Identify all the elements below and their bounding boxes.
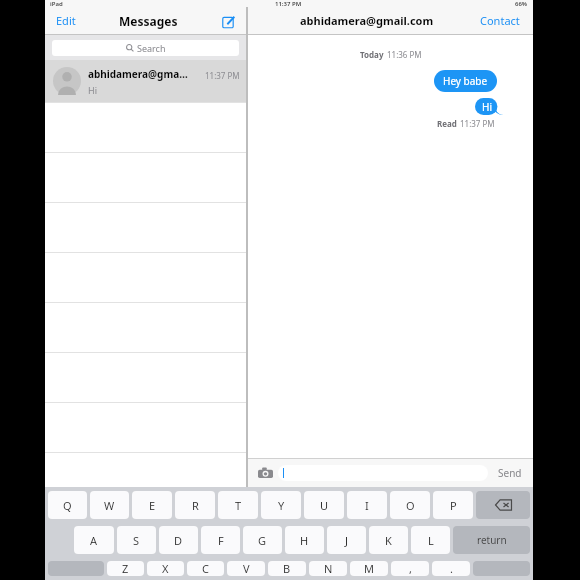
button[interactable]: V <box>227 561 265 576</box>
staticText: H <box>300 533 309 548</box>
button[interactable]: Backspace <box>476 491 530 519</box>
staticText: A <box>90 533 98 548</box>
staticText: U <box>320 498 329 513</box>
button[interactable]: Take photo <box>256 464 274 482</box>
button[interactable]: C <box>187 561 224 576</box>
staticText: W <box>104 498 115 513</box>
staticText: L <box>428 533 434 548</box>
button[interactable]: G <box>243 526 282 554</box>
button[interactable]: Contact <box>477 9 523 32</box>
staticText: S <box>133 533 140 548</box>
staticText: K <box>385 533 392 548</box>
staticText: Read <box>437 118 457 129</box>
button[interactable]: . <box>432 561 470 576</box>
staticText: J <box>345 533 349 548</box>
staticText: E <box>149 498 156 513</box>
staticText: 11:36 PM <box>387 49 422 60</box>
button[interactable]: , <box>391 561 429 576</box>
staticText: Today <box>360 49 384 60</box>
staticText: F <box>218 533 224 548</box>
button[interactable]: Return <box>453 526 530 554</box>
button[interactable]: N <box>309 561 347 576</box>
staticText: iPad <box>50 0 63 7</box>
staticText: M <box>364 561 374 576</box>
button[interactable]: J <box>327 526 366 554</box>
staticText: Q <box>63 498 72 513</box>
staticText: 11:37 PM <box>205 70 240 81</box>
staticText: Messages <box>119 13 178 29</box>
staticText: T <box>235 498 242 513</box>
button[interactable]: X <box>147 561 184 576</box>
button[interactable]: abhidamera@gma… <box>45 60 246 102</box>
button[interactable]: R <box>175 491 215 519</box>
button[interactable]: M <box>350 561 388 576</box>
button[interactable]: O <box>390 491 430 519</box>
button[interactable]: P <box>433 491 473 519</box>
staticText: Search <box>137 42 166 54</box>
staticText: Hey babe <box>443 74 488 88</box>
button[interactable]: U <box>304 491 344 519</box>
button[interactable]: Q <box>48 491 87 519</box>
button[interactable]: Hey babe <box>434 70 497 92</box>
button[interactable]: L <box>411 526 450 554</box>
staticText: 11:37 PM <box>275 0 302 7</box>
staticText: Send <box>498 466 522 480</box>
staticText: X <box>162 561 169 576</box>
staticText: N <box>324 561 333 576</box>
staticText: abhidamera@gmail.com <box>300 13 434 28</box>
staticText: , <box>409 561 412 576</box>
staticText: . <box>450 561 453 576</box>
button[interactable]: Send <box>495 462 525 484</box>
staticText: P <box>450 498 457 513</box>
staticText: G <box>258 533 267 548</box>
button[interactable]: Y <box>261 491 301 519</box>
button[interactable]: K <box>369 526 408 554</box>
staticText: O <box>406 498 415 513</box>
button[interactable]: Search <box>52 40 239 56</box>
staticText: return <box>477 533 507 547</box>
staticText: Z <box>122 561 129 576</box>
button[interactable]: D <box>159 526 198 554</box>
button[interactable]: Hi <box>475 98 503 115</box>
button[interactable]: H <box>285 526 324 554</box>
staticText: I <box>365 498 369 513</box>
staticText: B <box>283 561 291 576</box>
staticText: Edit <box>56 13 76 28</box>
button[interactable]: E <box>132 491 172 519</box>
button[interactable] <box>278 465 488 481</box>
staticText: Contact <box>480 13 520 28</box>
button[interactable]: Z <box>107 561 144 576</box>
button[interactable]: W <box>90 491 129 519</box>
staticText: Hi <box>482 100 492 114</box>
button[interactable]: T <box>218 491 258 519</box>
staticText: R <box>192 498 199 513</box>
staticText: D <box>174 533 183 548</box>
button[interactable]: B <box>268 561 306 576</box>
staticText: V <box>243 561 250 576</box>
staticText: Y <box>278 498 285 513</box>
button[interactable]: Compose new message <box>218 11 238 31</box>
staticText: 66% <box>515 0 528 7</box>
button[interactable]: A <box>74 526 114 554</box>
button[interactable]: Edit <box>53 9 79 32</box>
button[interactable]: F <box>201 526 240 554</box>
button[interactable]: I <box>347 491 387 519</box>
staticText: C <box>202 561 209 576</box>
staticText: 11:37 PM <box>460 118 495 129</box>
staticText: Hi <box>88 84 97 96</box>
button[interactable]: S <box>117 526 156 554</box>
staticText: abhidamera@gma… <box>88 67 188 81</box>
